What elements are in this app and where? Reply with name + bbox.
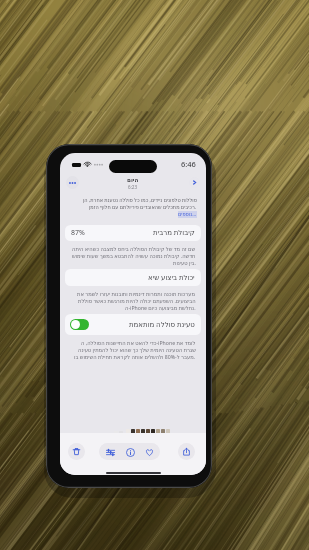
- staticText: בין טעינות.: [173, 259, 196, 266]
- button[interactable]: [131, 429, 135, 439]
- staticText: כדי להאט את התיישנות הסוללה, ה-iPhone לו…: [81, 339, 196, 346]
- staticText: ה-iPhone נחלשת מביצועה כיום.: [125, 304, 196, 311]
- button[interactable]: Delete: [68, 443, 85, 460]
- button[interactable]: [166, 429, 170, 439]
- button[interactable]: Favorite: [141, 444, 157, 460]
- staticText: יכולת ביצוע שיא: [148, 273, 195, 283]
- staticText: הביצועים. השפעתם יכולה להיות מורגשת כאשר…: [78, 297, 196, 304]
- staticText: קיבולת מרבית: [153, 228, 195, 238]
- staticText: רכיבים מתכלים שהאובדים פיריולתם עם חלוף …: [89, 204, 197, 211]
- staticText: 87%: [71, 228, 85, 238]
- button[interactable]: [119, 431, 123, 438]
- button[interactable]: קיבולת מרבית: [65, 225, 201, 241]
- staticText: 6:46: [181, 159, 196, 169]
- button[interactable]: More options: [66, 176, 79, 189]
- button[interactable]: [146, 429, 150, 439]
- button[interactable]: נוספים...: [178, 211, 197, 218]
- staticText: שם זה מד של קיבולת הסוללה ביחס למצבה כשה…: [72, 245, 196, 252]
- staticText: מעבר ל-80% ולהשלים אותה לקראת תחילת השימ…: [74, 353, 196, 360]
- staticText: נוספים...: [178, 211, 197, 218]
- button[interactable]: Info: [122, 444, 138, 460]
- staticText: מערכות תוכנה ותמרות דינמיות ותובנות יעזר…: [77, 290, 196, 297]
- staticText: חדשה. קיבולת נמוכה עשויה להתבטא במשך שעו…: [72, 252, 196, 259]
- staticText: סוללות טלפונים ניידים, כמו כל סוללה נטענ…: [83, 197, 197, 204]
- button[interactable]: טעינת סוללה מותאמת: [65, 314, 201, 335]
- button[interactable]: [151, 429, 155, 439]
- staticText: 6:23: [128, 184, 138, 190]
- button[interactable]: Optimized battery charging toggle: [70, 319, 89, 330]
- button[interactable]: Share: [178, 443, 195, 460]
- button[interactable]: [114, 431, 118, 438]
- button[interactable]: [136, 429, 140, 439]
- button[interactable]: [141, 429, 145, 439]
- staticText: היום: [127, 177, 139, 184]
- button[interactable]: Adjust: [102, 444, 118, 460]
- staticText: שגרת הטעינה היומית שלך כך שהוא יכול להמת…: [78, 346, 196, 353]
- button[interactable]: [126, 429, 130, 439]
- button[interactable]: Next photo: [189, 177, 200, 188]
- button[interactable]: [161, 429, 165, 439]
- button[interactable]: [156, 429, 160, 439]
- button[interactable]: יכולת ביצוע שיא: [65, 269, 201, 286]
- staticText: טעינת סוללה מותאמת: [129, 320, 195, 330]
